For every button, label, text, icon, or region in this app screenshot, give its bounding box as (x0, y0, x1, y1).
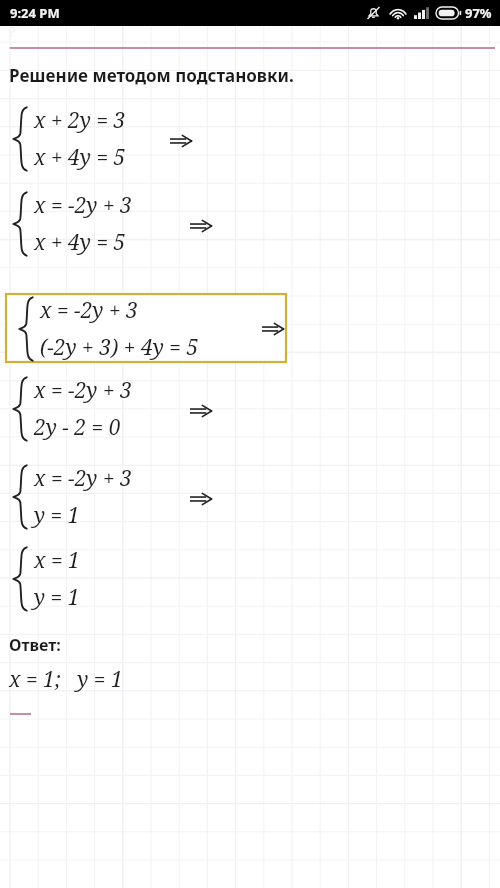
staticText: x = 1; y = 1 (9, 665, 123, 694)
staticText: x = −2y + 3 (34, 464, 132, 493)
other: Signal strength (414, 7, 429, 19)
button[interactable] (6, 294, 286, 362)
staticText: 9:24 PM (10, 4, 60, 22)
button[interactable]: x + 2y = 3 (12, 106, 126, 172)
staticText: (−2y + 3) + 4y = 5 (40, 333, 199, 362)
staticText: Ответ: (9, 634, 61, 656)
other: Wi-Fi (390, 7, 406, 20)
button[interactable]: x = −2y + 3 (12, 464, 132, 530)
button[interactable]: x = −2y + 3 (18, 296, 199, 362)
button[interactable]: x = 1 (12, 546, 80, 612)
other: Battery 97 percent (436, 7, 461, 19)
staticText: x + 4y = 5 (34, 228, 126, 257)
staticText: x = −2y + 3 (34, 376, 132, 405)
staticText: y = 1 (34, 583, 80, 612)
staticText: y = 1 (34, 501, 80, 530)
staticText: x = −2y + 3 (34, 191, 132, 220)
staticText: ? (9, 22, 16, 41)
button[interactable]: x = −2y + 3 (12, 191, 132, 257)
staticText: x = −2y + 3 (40, 296, 138, 325)
staticText: Решение методом подстановки. (9, 64, 294, 87)
other: Notifications muted (366, 6, 381, 20)
staticText: x = 1 (34, 546, 80, 575)
staticText: x + 4y = 5 (34, 143, 126, 172)
staticText: 97% (465, 4, 492, 22)
staticText: x + 2y = 3 (34, 106, 126, 135)
button[interactable]: x = −2y + 3 (12, 376, 132, 442)
staticText: 2y − 2 = 0 (34, 413, 121, 442)
